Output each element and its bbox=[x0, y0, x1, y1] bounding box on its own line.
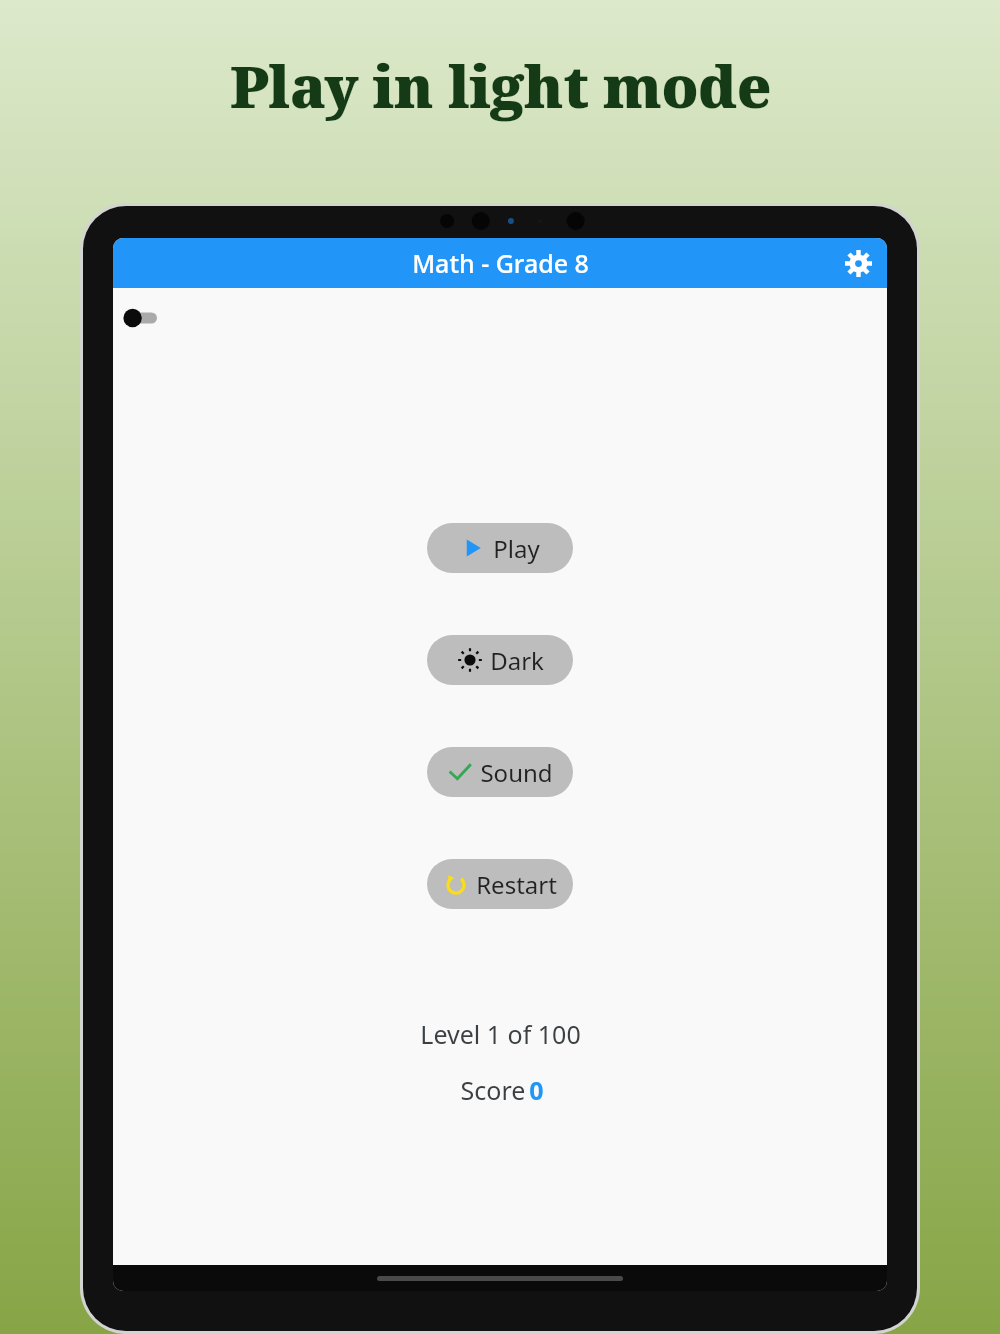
staticText: Score bbox=[457, 1073, 529, 1107]
staticText: Math - Grade 8 bbox=[412, 246, 589, 280]
button[interactable]: Settings bbox=[835, 240, 881, 286]
staticText: Play in light mode bbox=[230, 46, 771, 125]
button[interactable]: Toggle bbox=[123, 308, 157, 328]
staticText: Restart bbox=[476, 868, 557, 901]
button[interactable]: Play bbox=[427, 523, 573, 573]
button[interactable]: Sound bbox=[427, 747, 573, 797]
staticText: Play bbox=[493, 532, 540, 565]
staticText: Dark bbox=[490, 644, 544, 677]
button[interactable]: Restart bbox=[427, 859, 573, 909]
staticText: 0 bbox=[529, 1073, 544, 1107]
staticText: Level 1 of 100 bbox=[420, 1017, 581, 1051]
button[interactable]: Dark bbox=[427, 635, 573, 685]
staticText: Sound bbox=[480, 756, 553, 789]
